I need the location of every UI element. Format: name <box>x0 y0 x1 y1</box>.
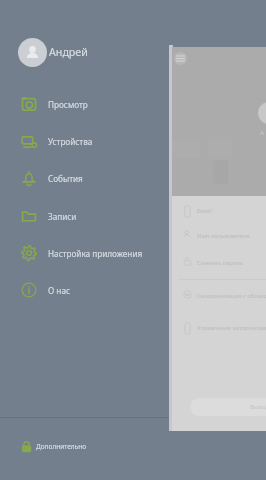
staticText: Выход <box>250 403 266 411</box>
staticText: Имя пользователя <box>197 232 250 240</box>
button[interactable]: Дополнительно <box>0 428 169 465</box>
button[interactable]: Open navigation menu <box>174 52 187 65</box>
staticText: События <box>48 173 83 184</box>
staticText: Email <box>197 207 212 215</box>
button[interactable]: Просмотр <box>0 87 169 121</box>
button[interactable]: Настройка приложения <box>0 236 169 270</box>
button[interactable]: События <box>0 161 169 195</box>
staticText: Устройства <box>48 136 93 147</box>
button[interactable]: О нас <box>0 273 169 307</box>
button[interactable]: Синхронизация с облаком <box>183 285 266 307</box>
staticText: Андрей <box>49 45 88 60</box>
button[interactable]: Имя пользователя <box>183 225 266 247</box>
staticText: Просмотр <box>48 99 88 110</box>
button[interactable]: Андрей <box>0 36 169 69</box>
staticText: A <box>260 129 264 137</box>
staticText: Записи <box>48 211 77 222</box>
staticText: Синхронизация с облаком <box>197 292 266 300</box>
staticText: Управление авторизованными устройствами <box>197 324 266 332</box>
button[interactable]: Устройства <box>0 124 169 158</box>
staticText: Дополнительно <box>36 442 86 451</box>
button[interactable]: Записи <box>0 199 169 233</box>
staticText: Настройка приложения <box>48 248 143 259</box>
button[interactable]: Управление авторизованными устройствами <box>183 317 266 339</box>
staticText: Сменить пароль <box>197 259 244 267</box>
staticText: О нас <box>48 285 70 296</box>
button[interactable]: Сменить пароль <box>183 252 266 274</box>
